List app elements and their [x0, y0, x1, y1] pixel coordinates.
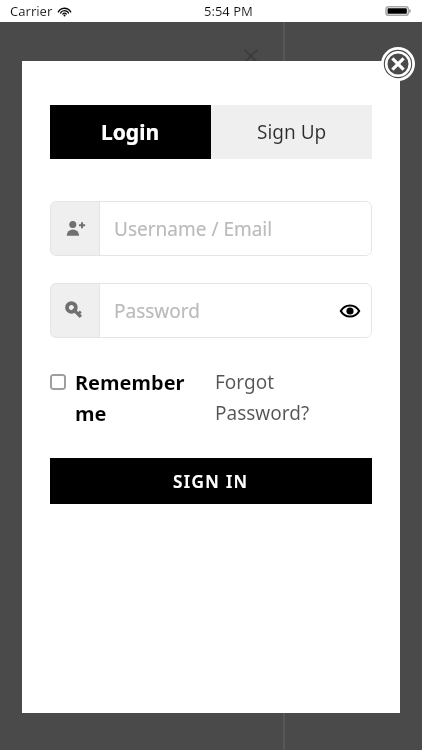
staticText: Username / Email: [114, 216, 273, 242]
staticText: Login: [101, 118, 160, 147]
staticText: Forgot Password?: [215, 369, 335, 425]
button[interactable]: Close: [381, 47, 415, 81]
button[interactable]: Sign Up: [211, 105, 372, 159]
staticText: Sign Up: [257, 119, 327, 145]
button[interactable]: Username / Email: [50, 201, 372, 256]
button[interactable]: SIGN IN: [50, 458, 372, 504]
staticText: Password: [114, 298, 200, 324]
button[interactable]: Password: [50, 283, 372, 338]
staticText: Remember me: [75, 369, 205, 426]
staticText: SIGN IN: [173, 470, 249, 493]
staticText: Carrier: [10, 2, 53, 20]
button[interactable]: Show password: [328, 283, 372, 338]
button[interactable]: Login: [50, 105, 211, 159]
button[interactable]: Forgot Password?: [215, 369, 335, 425]
staticText: 5:54 PM: [204, 2, 253, 20]
button[interactable]: Remember me: [50, 369, 205, 426]
